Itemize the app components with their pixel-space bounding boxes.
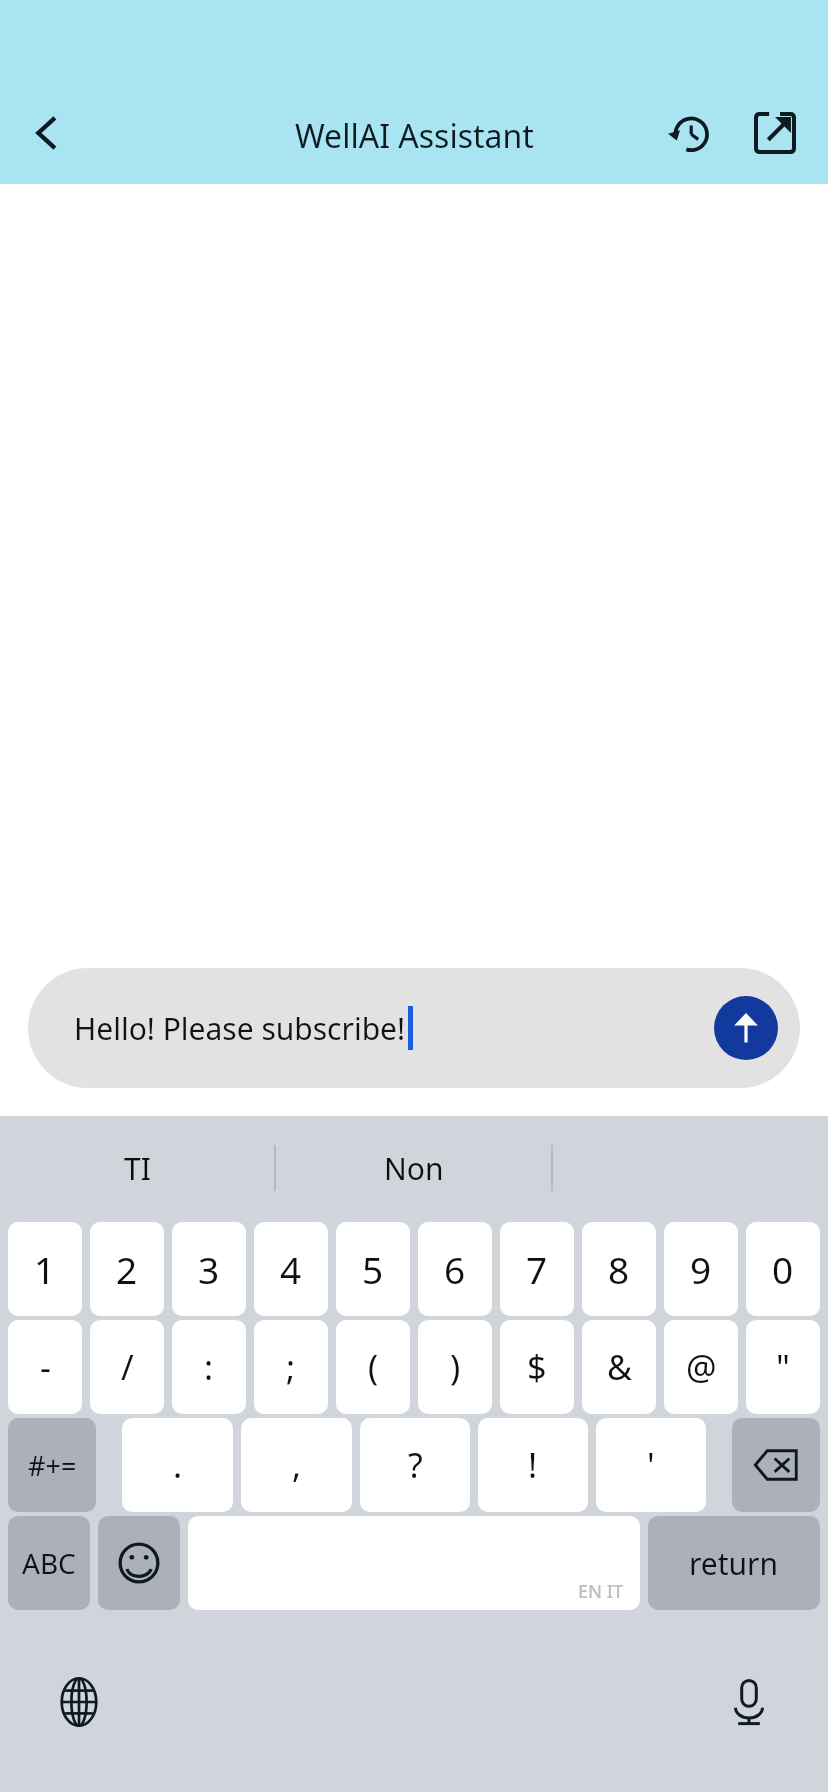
button[interactable]: &	[582, 1320, 656, 1414]
button[interactable]: '	[596, 1418, 706, 1512]
staticText: 7	[526, 1244, 548, 1294]
staticText: /	[121, 1344, 134, 1390]
staticText: #+=	[28, 1447, 77, 1484]
button[interactable]: 3	[172, 1222, 246, 1316]
button[interactable]: $	[500, 1320, 574, 1414]
staticText: '	[647, 1442, 655, 1488]
staticText: $	[527, 1344, 547, 1390]
button[interactable]: 1	[8, 1222, 82, 1316]
button[interactable]: Open in new	[740, 98, 810, 168]
button[interactable]: 0	[746, 1222, 820, 1316]
staticText: !	[528, 1442, 538, 1488]
staticText: "	[776, 1344, 790, 1390]
staticText: ;	[286, 1344, 296, 1390]
staticText: :	[204, 1344, 214, 1390]
staticText: (	[368, 1344, 379, 1390]
staticText: 5	[362, 1244, 384, 1294]
button[interactable]: !	[478, 1418, 588, 1512]
button[interactable]: ?	[360, 1418, 470, 1512]
staticText: return	[689, 1543, 779, 1584]
staticText: -	[40, 1344, 51, 1390]
staticText: 0	[772, 1244, 794, 1294]
staticText: .	[173, 1442, 183, 1488]
staticText: TI	[124, 1148, 151, 1189]
button[interactable]: Send	[714, 996, 778, 1060]
button[interactable]: 5	[336, 1222, 410, 1316]
button[interactable]: :	[172, 1320, 246, 1414]
staticText: ?	[408, 1442, 423, 1488]
staticText: 3	[198, 1244, 220, 1294]
button[interactable]: ABC	[8, 1516, 90, 1610]
button[interactable]: 2	[90, 1222, 164, 1316]
button[interactable]: 6	[418, 1222, 492, 1316]
button[interactable]: 4	[254, 1222, 328, 1316]
button[interactable]: Non	[276, 1116, 551, 1220]
button[interactable]: TI	[0, 1116, 274, 1220]
button[interactable]: .	[122, 1418, 233, 1512]
button[interactable]: #+=	[8, 1418, 96, 1512]
button[interactable]: @	[664, 1320, 738, 1414]
button[interactable]: -	[8, 1320, 82, 1414]
button[interactable]: History	[654, 98, 724, 168]
button[interactable]: "	[746, 1320, 820, 1414]
button[interactable]: Emoji	[98, 1516, 180, 1610]
staticText: 6	[444, 1244, 466, 1294]
button[interactable]: )	[418, 1320, 492, 1414]
button[interactable]: ,	[241, 1418, 352, 1512]
staticText: ,	[292, 1442, 302, 1488]
staticText: &	[607, 1344, 632, 1390]
button[interactable]: 9	[664, 1222, 738, 1316]
staticText: EN IT	[578, 1579, 624, 1604]
staticText: WellAI Assistant	[295, 114, 534, 158]
button[interactable]: (	[336, 1320, 410, 1414]
staticText: Hello! Please subscribe!	[74, 1008, 406, 1049]
button[interactable]: Change language	[42, 1665, 116, 1739]
staticText: 2	[116, 1244, 138, 1294]
button[interactable]: Back	[12, 98, 82, 168]
button[interactable]: /	[90, 1320, 164, 1414]
staticText: 8	[608, 1244, 630, 1294]
button[interactable]: 7	[500, 1222, 574, 1316]
button[interactable]: Voice input	[712, 1665, 786, 1739]
button[interactable]: Hello! Please subscribe!	[28, 968, 800, 1088]
button[interactable]: Backspace	[732, 1418, 820, 1512]
button[interactable]: return	[648, 1516, 820, 1610]
staticText: 1	[34, 1244, 56, 1294]
staticText: Non	[384, 1148, 444, 1189]
button[interactable]: 8	[582, 1222, 656, 1316]
button[interactable]: ;	[254, 1320, 328, 1414]
button[interactable]: Space	[188, 1516, 640, 1610]
staticText: 9	[690, 1244, 712, 1294]
staticText: )	[450, 1344, 461, 1390]
staticText: @	[686, 1344, 717, 1390]
staticText: ABC	[22, 1544, 76, 1582]
staticText: 4	[280, 1244, 302, 1294]
